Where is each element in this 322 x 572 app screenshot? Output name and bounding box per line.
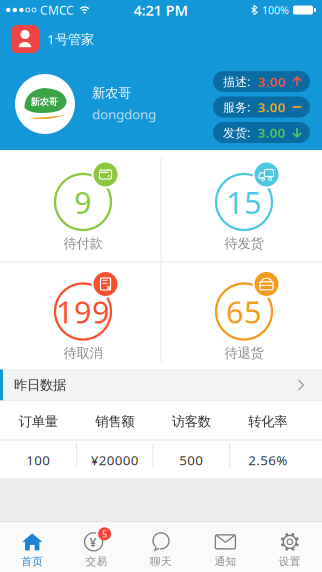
- staticText: 服务:: [223, 99, 250, 115]
- button[interactable]: 发货:: [213, 122, 310, 143]
- staticText: 发货:: [223, 124, 250, 140]
- staticText: 通知: [214, 555, 236, 568]
- button[interactable]: 昨日数据: [0, 369, 322, 400]
- staticText: CMCC: [40, 2, 74, 18]
- staticText: 描述:: [223, 73, 250, 89]
- staticText: 待取消: [63, 345, 102, 361]
- staticText: 首页: [21, 555, 43, 568]
- staticText: ¥: [90, 534, 97, 550]
- staticText: 1号管家: [47, 30, 94, 48]
- staticText: 转化率: [248, 413, 287, 430]
- staticText: 新农哥: [30, 96, 57, 108]
- staticText: ¥20000: [91, 451, 139, 469]
- staticText: 3.00: [257, 98, 285, 116]
- staticText: 访客数: [172, 413, 211, 430]
- staticText: 199: [56, 291, 110, 332]
- staticText: 待付款: [63, 235, 102, 252]
- button[interactable]: 15: [161, 150, 322, 262]
- button[interactable]: 账户: [11, 25, 39, 53]
- staticText: 15: [226, 182, 262, 222]
- staticText: 交易: [86, 555, 108, 568]
- staticText: 订单量: [19, 413, 58, 430]
- staticText: 65: [226, 291, 262, 332]
- button[interactable]: 65: [161, 262, 322, 369]
- button[interactable]: 服务:: [213, 96, 310, 117]
- staticText: 待退货: [224, 345, 263, 361]
- staticText: 昨日数据: [14, 377, 66, 393]
- staticText: 100%: [262, 3, 289, 17]
- button[interactable]: 首页: [0, 522, 64, 572]
- staticText: 9: [74, 182, 92, 222]
- button[interactable]: 聊天: [129, 522, 193, 572]
- staticText: 设置: [279, 555, 301, 568]
- staticText: 2.56%: [248, 451, 287, 469]
- staticText: 100: [26, 451, 50, 469]
- staticText: 500: [179, 451, 203, 469]
- staticText: 5: [102, 528, 107, 540]
- staticText: 销售额: [95, 413, 134, 430]
- staticText: 新农哥: [92, 85, 131, 101]
- staticText: 3.00: [257, 73, 285, 90]
- staticText: 聊天: [150, 555, 172, 568]
- staticText: 待发货: [224, 235, 263, 252]
- button[interactable]: 设置: [258, 522, 322, 572]
- button[interactable]: 199: [0, 262, 161, 369]
- button[interactable]: ¥: [64, 522, 129, 572]
- button[interactable]: 描述:: [213, 71, 310, 92]
- staticText: 3.00: [257, 124, 285, 141]
- staticText: dongdong: [92, 105, 156, 123]
- button[interactable]: 9: [0, 150, 161, 262]
- staticText: 4:21 PM: [133, 0, 188, 20]
- button[interactable]: 通知: [193, 522, 258, 572]
